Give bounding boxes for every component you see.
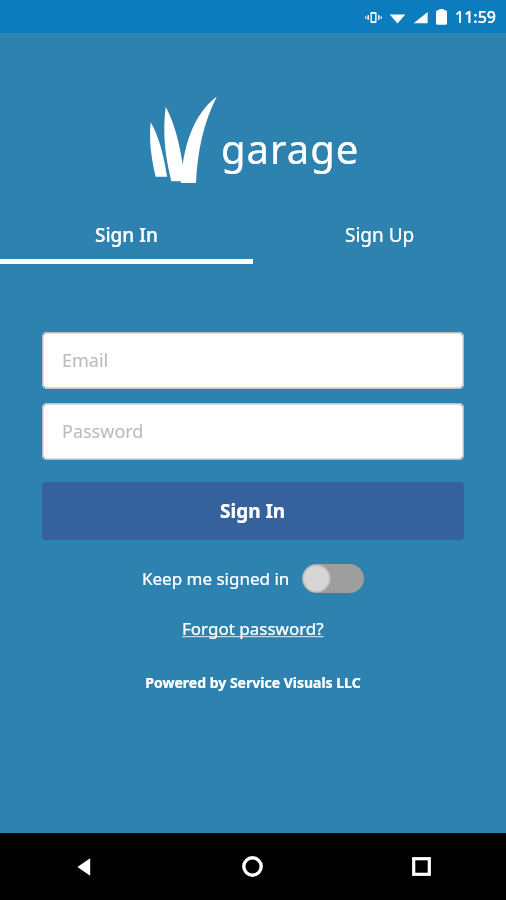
button[interactable]: Email — [42, 332, 464, 389]
button[interactable]: Sign Up — [253, 206, 506, 264]
staticText: Keep me signed in — [142, 567, 290, 590]
button[interactable]: Keep me signed in — [136, 560, 370, 597]
button[interactable]: Recent apps — [337, 833, 506, 900]
button[interactable]: Home — [168, 833, 337, 900]
staticText: Forgot password? — [182, 617, 324, 640]
staticText: Sign In — [220, 498, 286, 524]
button[interactable]: Back — [0, 833, 168, 900]
staticText: 11:59 — [455, 6, 496, 28]
button[interactable]: Forgot password? — [174, 614, 332, 643]
button[interactable]: Sign In — [0, 206, 253, 264]
button[interactable]: Password — [42, 403, 464, 460]
button[interactable]: Keep me signed in toggle — [302, 564, 364, 593]
button[interactable]: Sign In — [42, 482, 464, 540]
staticText: Sign In — [95, 222, 158, 248]
staticText: Password — [62, 419, 144, 444]
staticText: Email — [62, 348, 109, 373]
staticText: garage — [221, 121, 360, 175]
staticText: Sign Up — [345, 222, 415, 248]
staticText: Powered by Service Visuals LLC — [145, 673, 361, 692]
